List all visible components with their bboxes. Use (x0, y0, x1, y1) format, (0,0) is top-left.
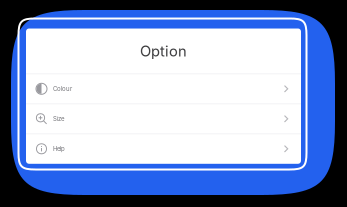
staticText: Help (53, 145, 65, 152)
button[interactable]: Help (26, 134, 301, 164)
staticText: Option (140, 42, 187, 60)
staticText: Colour (53, 85, 72, 92)
staticText: Size (53, 115, 64, 122)
button[interactable]: Size (26, 104, 301, 134)
button[interactable]: Colour (26, 74, 301, 104)
